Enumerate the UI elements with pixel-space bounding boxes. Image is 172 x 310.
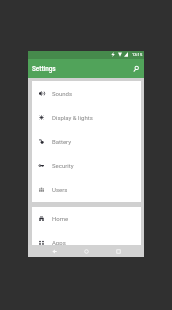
button[interactable]: Recents bbox=[114, 245, 122, 257]
button[interactable]: Back bbox=[50, 245, 58, 257]
button[interactable]: Display & lights bbox=[32, 105, 141, 129]
button[interactable]: Home bbox=[82, 245, 90, 257]
staticText: Battery bbox=[52, 138, 72, 145]
button[interactable]: Search bbox=[129, 62, 142, 75]
button[interactable]: Sounds bbox=[32, 81, 141, 105]
staticText: Security bbox=[52, 162, 74, 169]
button[interactable]: Home bbox=[32, 206, 141, 230]
button[interactable]: Battery bbox=[32, 129, 141, 153]
staticText: Home bbox=[52, 215, 69, 222]
staticText: Apps bbox=[52, 239, 66, 246]
staticText: Sounds bbox=[52, 90, 73, 97]
staticText: Settings bbox=[32, 65, 56, 73]
staticText: Display & lights bbox=[52, 114, 93, 121]
button[interactable]: Users bbox=[32, 177, 141, 201]
staticText: Users bbox=[52, 186, 68, 193]
button[interactable]: Apps bbox=[32, 230, 141, 254]
staticText: 13:15 bbox=[132, 52, 143, 57]
button[interactable]: Security bbox=[32, 153, 141, 177]
